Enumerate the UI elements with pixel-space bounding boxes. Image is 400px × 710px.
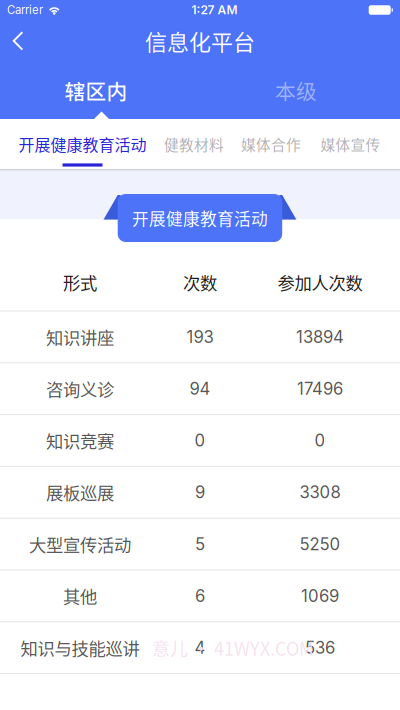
staticText: 536 [305,638,335,658]
button[interactable]: 本级 [192,62,400,119]
staticText: 展板巡展 [46,480,114,505]
button[interactable]: 开展健康教育活动 [9,119,156,169]
staticText: 健教材料 [164,133,224,155]
staticText: 1:27 AM [192,3,238,17]
staticText: 17496 [297,379,343,399]
staticText: 开展健康教育活动 [132,206,268,230]
button[interactable]: 辖区内 [0,62,192,119]
staticText: 媒体宣传 [320,133,380,155]
staticText: 13894 [296,327,344,347]
staticText: 9 [195,482,205,502]
staticText: 其他 [63,583,97,608]
button[interactable]: 媒体宣传 [310,119,391,169]
staticText: 193 [186,327,213,347]
staticText: 6 [195,586,205,606]
staticText: 知识讲座 [46,324,114,349]
staticText: 大型宣传活动 [29,532,131,557]
staticText: 意儿 · 41WYX.COM [152,635,314,661]
staticText: 咨询义诊 [46,376,114,401]
staticText: Carrier [7,3,43,17]
staticText: 94 [189,379,210,399]
staticText: 形式 [63,270,97,295]
staticText: 次数 [183,270,217,295]
staticText: 知识竞赛 [46,428,114,453]
staticText: 4 [194,638,205,658]
button[interactable]: 健教材料 [156,119,232,169]
staticText: 媒体合作 [241,133,301,155]
button[interactable]: Back [0,20,42,62]
staticText: 开展健康教育活动 [18,132,146,156]
staticText: 0 [314,430,325,451]
staticText: 本级 [275,75,317,105]
staticText: 辖区内 [64,75,127,105]
staticText: 5 [195,534,205,554]
staticText: 1069 [301,586,339,606]
staticText: 0 [194,430,205,451]
staticText: 知识与技能巡讲 [20,635,139,660]
staticText: 5250 [299,534,340,554]
button[interactable]: 媒体合作 [232,119,310,169]
staticText: 3308 [299,482,340,502]
staticText: 参加人次数 [277,270,362,295]
staticText: 信息化平台 [145,25,255,57]
